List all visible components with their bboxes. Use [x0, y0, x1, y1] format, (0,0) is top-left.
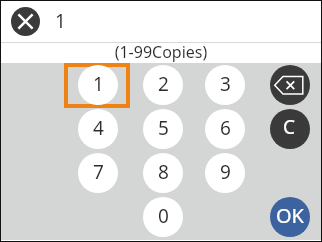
button[interactable]: 7	[78, 153, 118, 193]
staticText: 9	[220, 159, 231, 185]
button[interactable]: 2	[143, 65, 183, 105]
staticText: 3	[220, 71, 231, 97]
button[interactable]: 4	[78, 109, 118, 149]
button[interactable]: Close	[11, 7, 40, 36]
staticText: 8	[158, 159, 169, 185]
button[interactable]: 6	[205, 109, 245, 149]
button[interactable]: OK	[270, 197, 310, 237]
button[interactable]: 8	[143, 153, 183, 193]
button[interactable]: 1	[78, 65, 118, 105]
staticText: 1	[55, 8, 66, 34]
button[interactable]: Backspace	[270, 65, 310, 105]
staticText: 4	[93, 115, 104, 141]
staticText: 7	[93, 159, 104, 185]
button[interactable]: 9	[205, 153, 245, 193]
staticText: 5	[158, 115, 169, 141]
staticText: 0	[158, 203, 169, 229]
staticText: OK	[276, 202, 304, 229]
button[interactable]: C	[270, 109, 310, 149]
staticText: C	[283, 114, 296, 140]
staticText: 2	[158, 71, 169, 97]
button[interactable]: 0	[143, 197, 183, 237]
button[interactable]: 5	[143, 109, 183, 149]
staticText: 6	[220, 115, 231, 141]
button[interactable]: 3	[205, 65, 245, 105]
staticText: (1-99Copies)	[0, 41, 322, 63]
staticText: 1	[93, 71, 104, 97]
